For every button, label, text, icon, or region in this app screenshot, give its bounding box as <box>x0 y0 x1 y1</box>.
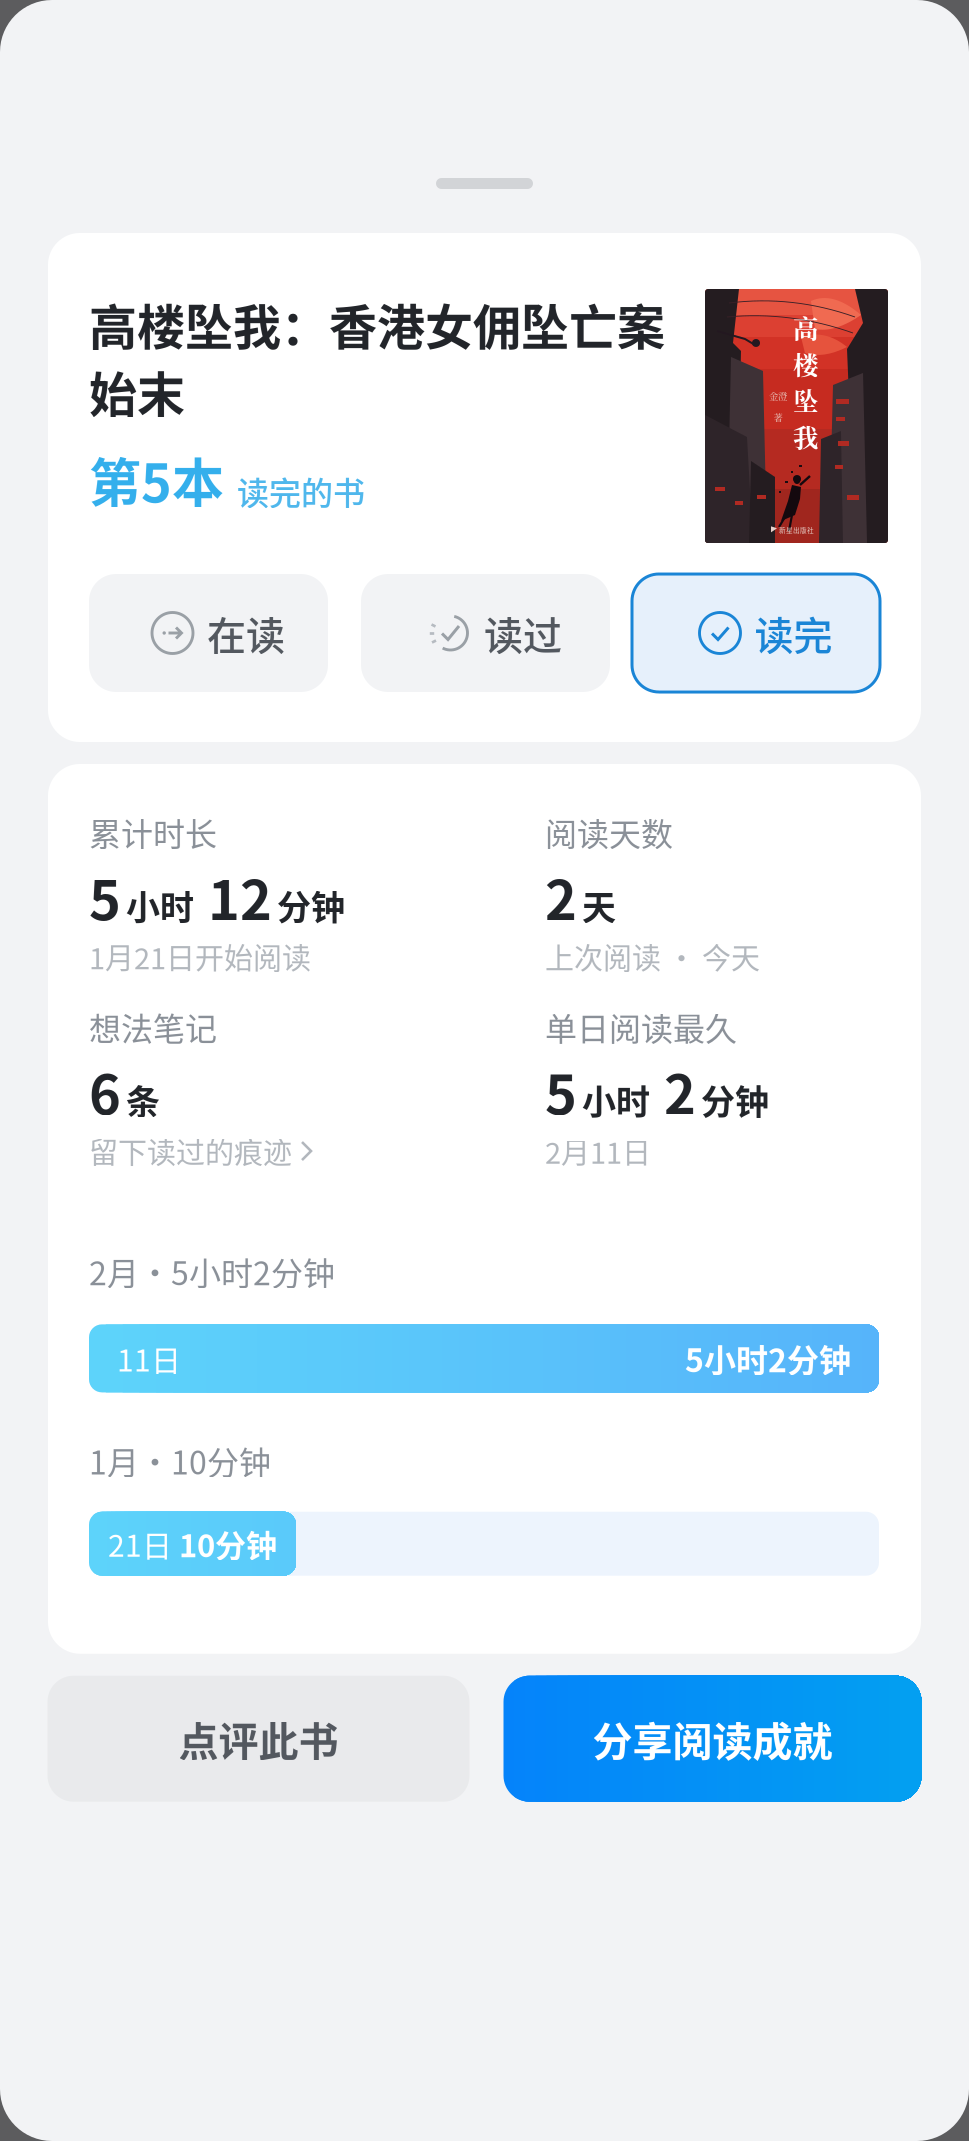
staticText: 著 <box>773 410 782 424</box>
button[interactable]: 读过 <box>361 574 610 692</box>
staticText: 2 <box>545 857 577 935</box>
staticText: 读完的书 <box>237 468 365 514</box>
button[interactable]: 读完 <box>632 574 880 692</box>
staticText: 新星出版社 <box>779 525 814 535</box>
staticText: 坠 <box>793 382 818 418</box>
staticText: 2月·5小时2分钟 <box>89 1248 335 1294</box>
staticText: 金澄 <box>769 389 787 402</box>
staticText: 5 <box>545 1052 577 1130</box>
staticText: 阅读天数 <box>545 809 673 855</box>
staticText: 分钟 <box>277 880 345 930</box>
staticText: 1月21日开始阅读 <box>89 935 311 977</box>
staticText: 分享阅读成就 <box>592 1710 832 1768</box>
staticText: 5 <box>89 857 121 935</box>
staticText: 21日 <box>108 1522 172 1565</box>
staticText: 12 <box>208 857 272 935</box>
staticText: 1月·10分钟 <box>89 1437 271 1484</box>
staticText: 留下读过的痕迹 <box>89 1130 292 1172</box>
button[interactable]: 在读 <box>89 574 328 692</box>
staticText: 小时 <box>582 1075 650 1124</box>
staticText: 分钟 <box>701 1075 769 1124</box>
button[interactable]: 点评此书 <box>47 1676 469 1802</box>
staticText: 2月11日 <box>545 1130 651 1172</box>
staticText: 在读 <box>207 605 285 661</box>
button[interactable]: 分享阅读成就 <box>503 1676 921 1802</box>
staticText: 楼 <box>793 345 818 382</box>
staticText: 小时 <box>126 880 194 930</box>
staticText: 读完 <box>754 605 832 661</box>
staticText: 2 <box>664 1052 696 1130</box>
button[interactable]: 留下读过的痕迹 <box>89 1130 314 1172</box>
staticText: 读过 <box>484 605 562 661</box>
staticText: 高楼坠我：香港女佣坠亡案始末 <box>89 289 665 426</box>
staticText: 上次阅读 · 今天 <box>545 935 760 977</box>
staticText: 我 <box>793 418 818 455</box>
staticText: 6 <box>89 1052 121 1130</box>
staticText: 10分钟 <box>172 1521 277 1566</box>
staticText: 累计时长 <box>89 809 217 855</box>
staticText: 点评此书 <box>178 1710 338 1768</box>
staticText: 5小时2分钟 <box>685 1335 851 1381</box>
staticText: 单日阅读最久 <box>545 1003 737 1050</box>
staticText: 第5本 <box>89 442 224 517</box>
staticText: 11日 <box>117 1337 181 1380</box>
staticText: 高 <box>793 309 818 345</box>
staticText: 条 <box>126 1075 160 1124</box>
staticText: 天 <box>582 880 616 930</box>
staticText: 想法笔记 <box>89 1003 217 1050</box>
